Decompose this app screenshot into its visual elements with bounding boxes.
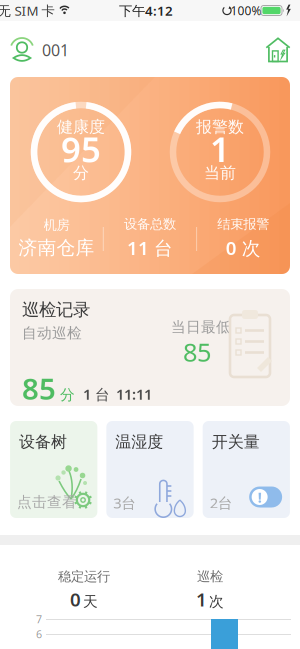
button[interactable]: 设备树 xyxy=(10,421,97,518)
staticText: 分 xyxy=(60,386,75,404)
staticText: 分 xyxy=(73,163,89,183)
button[interactable]: 001 xyxy=(9,35,69,65)
staticText: 85 xyxy=(183,335,211,369)
staticText: 温湿度 xyxy=(115,432,163,452)
staticText: 巡检记录 xyxy=(22,299,90,320)
staticText: ! xyxy=(258,487,262,507)
staticText: 95 xyxy=(61,126,101,172)
staticText: 3台 xyxy=(113,493,136,512)
staticText: 6 xyxy=(36,627,42,641)
button[interactable]: 温湿度 xyxy=(106,421,194,518)
staticText: 001 xyxy=(42,39,69,61)
staticText: 报警数 xyxy=(196,117,244,137)
staticText: 85 xyxy=(22,369,56,408)
staticText: 设备总数 xyxy=(124,216,176,232)
staticText: 1 xyxy=(210,126,230,172)
staticText: 11:11 xyxy=(116,384,152,404)
staticText: 设备树 xyxy=(19,432,67,452)
button[interactable]: 电站 xyxy=(265,37,290,62)
button[interactable]: ! xyxy=(203,421,290,518)
staticText: 点击查看 xyxy=(17,493,77,511)
staticText: 机房 xyxy=(44,217,70,233)
staticText: 稳定运行 xyxy=(58,568,110,585)
button[interactable]: 巡检记录 xyxy=(10,289,290,406)
staticText: 0 次 xyxy=(226,235,261,260)
staticText: 100% xyxy=(230,2,261,18)
staticText: 当前 xyxy=(204,163,236,183)
staticText: 自动巡检 xyxy=(22,324,82,342)
staticText: 次 xyxy=(209,592,224,610)
staticText: 无 SIM 卡 xyxy=(0,2,54,19)
staticText: 结束报警 xyxy=(217,216,269,232)
staticText: 1 台 xyxy=(83,384,110,404)
staticText: 健康度 xyxy=(57,117,105,137)
staticText: 7 xyxy=(36,612,42,626)
staticText: 当日最低 xyxy=(171,318,231,336)
staticText: 下午4:12 xyxy=(119,2,173,19)
button[interactable]: 机房 济南仓库 健康度 95 分 xyxy=(10,77,290,274)
staticText: 0 xyxy=(70,587,81,612)
staticText: 天 xyxy=(83,592,98,610)
staticText: 1 xyxy=(196,587,207,612)
staticText: 济南仓库 xyxy=(19,236,95,259)
staticText: 11 台 xyxy=(127,235,173,260)
staticText: 2台 xyxy=(210,493,233,512)
staticText: 巡检 xyxy=(197,568,223,585)
staticText: 开关量 xyxy=(212,432,260,452)
